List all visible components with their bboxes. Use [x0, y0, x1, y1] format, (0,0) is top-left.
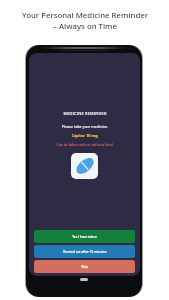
button[interactable]: Skip	[34, 260, 135, 273]
staticText: Can be taken with or without food.	[56, 142, 114, 147]
staticText: Yes I have taken	[72, 235, 97, 239]
staticText: Skip	[81, 265, 88, 269]
staticText: Please take your medicine.	[62, 124, 108, 129]
staticText: MEDICINE REMINDER	[63, 111, 107, 116]
button[interactable]: Medicine pill	[71, 153, 98, 179]
staticText: Remind me after 15 minutes	[63, 250, 107, 254]
button[interactable]: Yes I have taken	[34, 230, 135, 243]
staticText: Lipitor 10 mg	[72, 133, 98, 138]
staticText: Your Personal Medicine Reminder – Always…	[22, 10, 148, 32]
button[interactable]: Remind me after 15 minutes	[34, 245, 135, 258]
